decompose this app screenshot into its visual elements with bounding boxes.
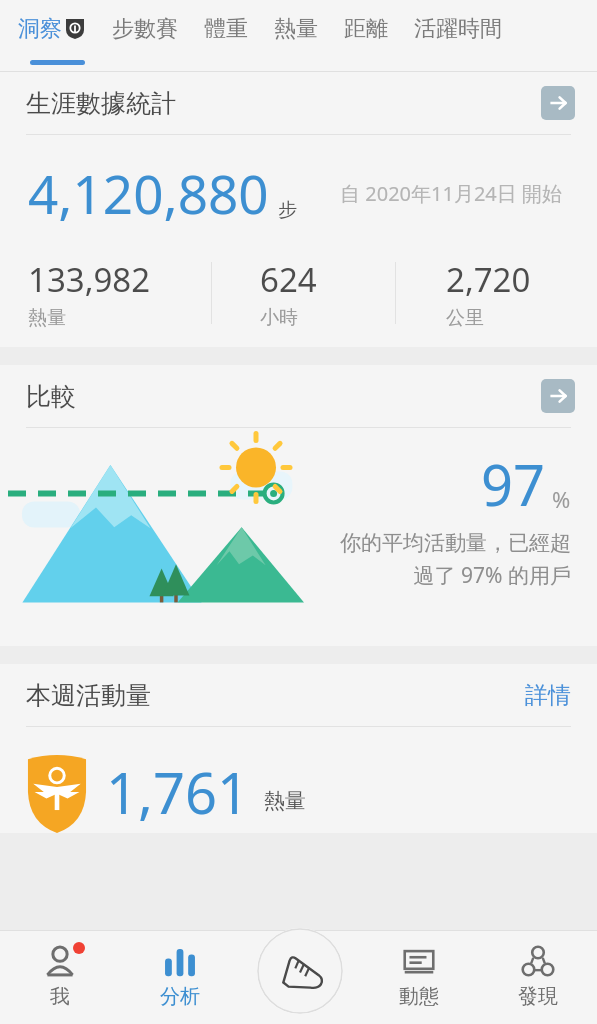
staticText: 本週活動量: [26, 680, 151, 711]
staticText: 2,720: [446, 257, 531, 302]
staticText: 1,761: [106, 754, 250, 830]
staticText: 步: [278, 198, 297, 222]
staticText: 發現: [518, 984, 558, 1009]
staticText: 詳情: [525, 681, 571, 710]
staticText: 活躍時間: [414, 15, 502, 43]
staticText: 體重: [204, 15, 248, 43]
button[interactable]: 活躍時間: [412, 15, 504, 43]
staticText: 4,120,880: [28, 157, 269, 229]
button[interactable]: 生涯數據統計: [0, 72, 597, 134]
staticText: 自 2020年11月24日 開始: [340, 180, 562, 207]
staticText: 動態: [399, 984, 439, 1009]
button[interactable]: 發現: [478, 930, 597, 1024]
button[interactable]: 分析: [120, 930, 240, 1024]
button[interactable]: 我: [0, 930, 120, 1024]
button[interactable]: 體重: [202, 15, 250, 43]
staticText: 624: [260, 257, 317, 302]
staticText: 洞察: [18, 15, 62, 43]
button[interactable]: 步數賽: [110, 15, 180, 43]
button[interactable]: 本週活動量: [0, 664, 597, 726]
button[interactable]: 動態: [359, 930, 478, 1024]
staticText: 熱量: [28, 306, 66, 330]
button[interactable]: 開啟 生涯數據統計: [541, 86, 575, 120]
staticText: 133,982: [28, 257, 151, 302]
staticText: 小時: [260, 306, 298, 330]
staticText: 步數賽: [112, 15, 178, 43]
staticText: 生涯數據統計: [26, 88, 176, 119]
staticText: 熱量: [264, 788, 306, 814]
staticText: 我: [50, 984, 70, 1009]
button[interactable]: 開始運動: [240, 930, 359, 1024]
staticText: 分析: [160, 984, 200, 1009]
button[interactable]: 比較: [0, 365, 597, 427]
button[interactable]: 距離: [342, 15, 390, 43]
staticText: 你的平均活動量，已經超過了 97% 的用戶: [320, 530, 571, 589]
staticText: %: [552, 484, 571, 514]
staticText: 97: [481, 446, 546, 522]
button[interactable]: 熱量: [272, 15, 320, 43]
staticText: 距離: [344, 15, 388, 43]
staticText: 熱量: [274, 15, 318, 43]
button[interactable]: 開啟 比較: [541, 379, 575, 413]
staticText: 比較: [26, 381, 76, 412]
button[interactable]: 洞察: [14, 15, 88, 43]
staticText: 公里: [446, 306, 484, 330]
